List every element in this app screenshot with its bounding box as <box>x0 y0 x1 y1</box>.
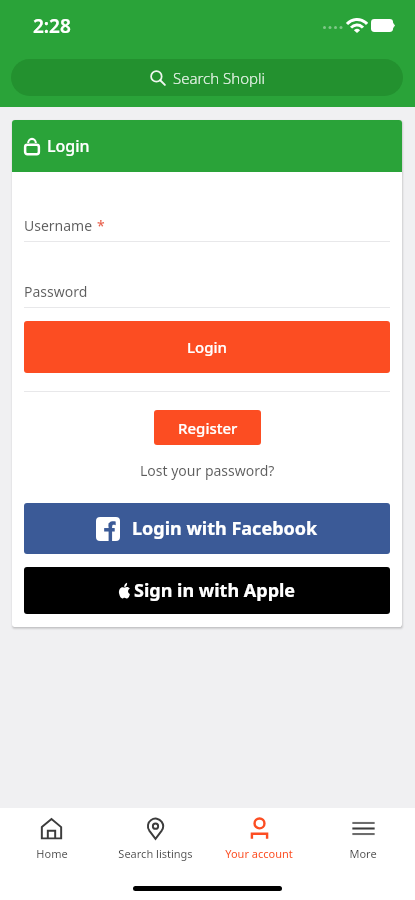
button[interactable]: Your account <box>207 808 311 861</box>
staticText: Lost your password? <box>140 461 275 480</box>
button[interactable]: Lost your password? <box>24 461 390 480</box>
staticText: Home <box>36 846 68 861</box>
staticText: Your account <box>225 846 293 861</box>
button[interactable]: Sign in with Apple <box>24 567 390 614</box>
staticText: Register <box>178 418 238 438</box>
button[interactable]: Search listings <box>103 808 207 861</box>
staticText: Login with Facebook <box>132 516 318 541</box>
button[interactable]: Register <box>154 410 261 445</box>
staticText: Search Shopli <box>173 68 265 88</box>
staticText: Login <box>187 337 227 357</box>
button[interactable]: Login <box>24 321 390 373</box>
button[interactable]: Search Shopli <box>11 59 403 96</box>
staticText: Sign in with Apple <box>134 578 296 603</box>
button[interactable]: More <box>311 808 415 861</box>
staticText: Username <box>24 216 93 235</box>
button[interactable]: Login with Facebook <box>24 503 390 554</box>
staticText: More <box>349 846 377 861</box>
staticText: Password <box>24 282 88 301</box>
staticText: Login <box>47 135 90 157</box>
staticText: * <box>97 216 105 235</box>
button[interactable]: Home <box>0 808 103 861</box>
staticText: 2:28 <box>33 13 71 39</box>
staticText: Search listings <box>118 846 193 861</box>
